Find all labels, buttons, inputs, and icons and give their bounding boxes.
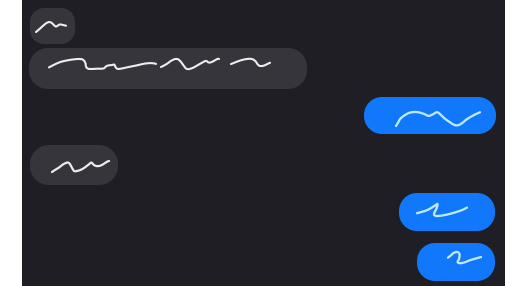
button[interactable]: Message: [364, 97, 496, 134]
button[interactable]: Message: [30, 145, 118, 185]
button[interactable]: Message: [30, 8, 75, 44]
button[interactable]: Message: [29, 48, 307, 89]
button[interactable]: Message: [399, 193, 495, 231]
button[interactable]: Message: [417, 243, 495, 281]
